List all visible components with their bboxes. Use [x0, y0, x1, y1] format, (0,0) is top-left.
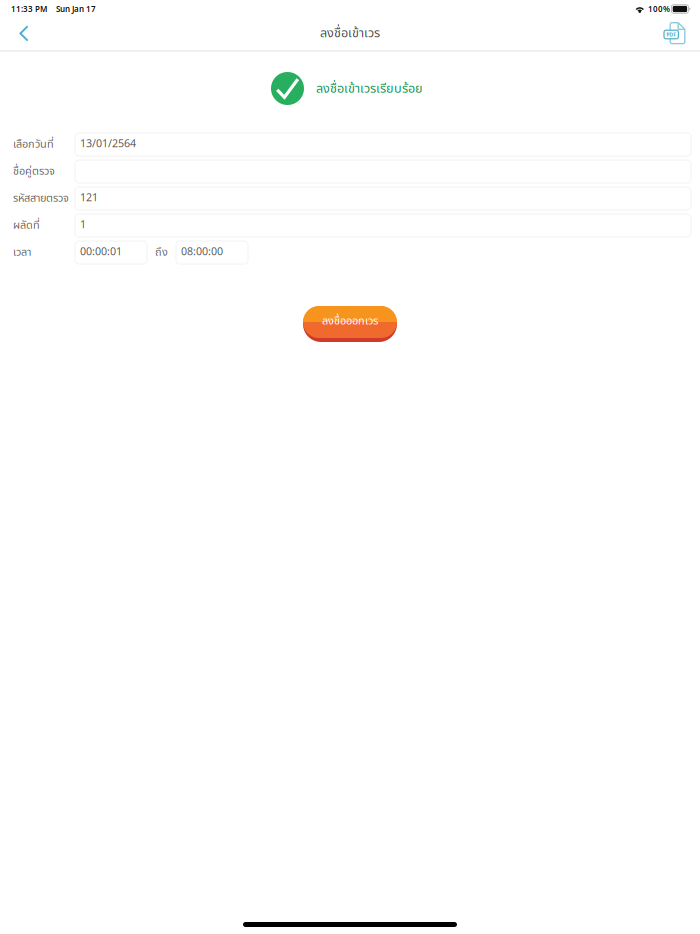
staticText: PDF	[666, 31, 676, 38]
staticText: 1	[80, 217, 86, 231]
staticText: ลงชื่อเข้าเวร	[320, 24, 380, 43]
button[interactable]: Back	[2, 17, 46, 50]
staticText: Sun Jan 17	[56, 4, 96, 14]
staticText: ถึง	[155, 244, 168, 261]
staticText: 121	[80, 190, 98, 204]
staticText: เวลา	[13, 244, 31, 261]
staticText: เลือกวันที่	[13, 136, 54, 153]
staticText: 00:00:01	[80, 244, 122, 258]
staticText: ลงชื่อออกเวร	[322, 313, 378, 329]
staticText: ชื่อคู่ตรวจ	[13, 163, 55, 180]
button[interactable]: ลงชื่อออกเวร	[303, 306, 397, 342]
staticText: 08:00:00	[181, 244, 223, 258]
staticText: ผลัดที่	[13, 217, 40, 234]
button[interactable]: Export PDF	[653, 17, 697, 50]
staticText: รหัสสายตรวจ	[13, 190, 69, 207]
staticText: 11:33 PM	[11, 4, 47, 14]
staticText: 100%	[648, 4, 670, 14]
staticText: 13/01/2564	[80, 136, 136, 150]
staticText: ลงชื่อเข้าเวรเรียบร้อย	[316, 79, 423, 98]
